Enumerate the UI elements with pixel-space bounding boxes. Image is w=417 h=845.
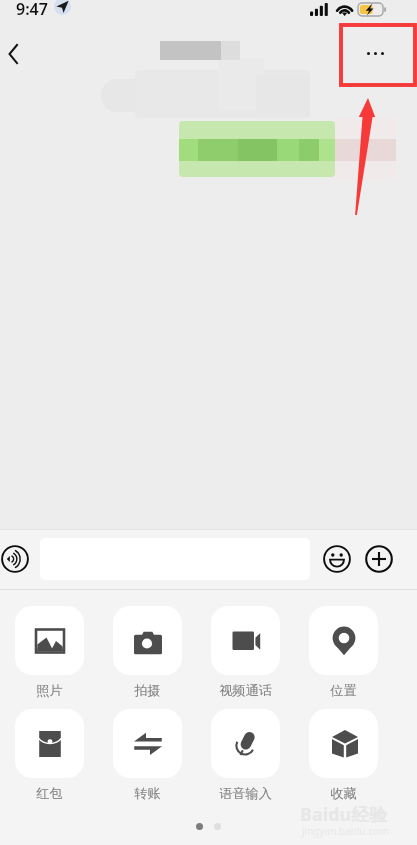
staticText: 红包 — [36, 785, 63, 802]
staticText: 位置 — [330, 682, 357, 699]
button[interactable]: 位置 — [309, 606, 378, 699]
button[interactable]: 视频通话 — [211, 606, 280, 699]
staticText: 语音输入 — [219, 785, 272, 802]
staticText: 视频通话 — [219, 682, 272, 699]
staticText: 拍摄 — [134, 682, 161, 699]
button[interactable]: Voice input — [1, 545, 29, 573]
button[interactable]: Back — [0, 32, 26, 76]
button[interactable]: Emoji — [323, 545, 351, 573]
staticText: 转账 — [134, 785, 161, 802]
button[interactable]: 拍摄 — [113, 606, 182, 699]
staticText: jingyan.baidu.com — [302, 824, 389, 838]
button[interactable]: 转账 — [113, 709, 182, 802]
button[interactable]: More options — [341, 25, 415, 85]
staticText: Baidu经验 — [300, 802, 388, 827]
button[interactable]: 照片 — [15, 606, 84, 699]
button[interactable]: 红包 — [15, 709, 84, 802]
staticText: 9:47 — [16, 0, 48, 20]
button[interactable]: 语音输入 — [211, 709, 280, 802]
staticText: 收藏 — [330, 785, 357, 802]
button[interactable]: More actions — [365, 545, 393, 573]
button[interactable]: 收藏 — [309, 709, 378, 802]
staticText: 照片 — [36, 682, 63, 699]
